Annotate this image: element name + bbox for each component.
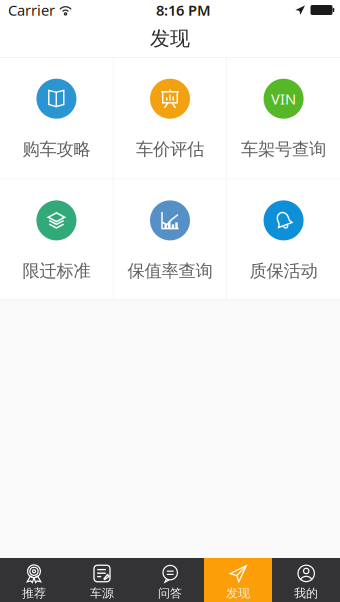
staticText: 车源 [90,586,114,601]
staticText: 车价评估 [136,139,204,160]
staticText: 问答 [158,586,182,601]
button[interactable]: 购车攻略 [0,58,113,179]
button[interactable]: 我的 [272,558,340,602]
button[interactable]: 保值率查询 [114,179,226,299]
staticText: 我的 [294,586,318,601]
button[interactable]: 车价评估 [114,58,226,179]
staticText: 发现 [226,586,250,601]
staticText: 8:16 PM [156,0,211,20]
staticText: 购车攻略 [22,139,90,160]
staticText: VIN [271,89,296,108]
button[interactable]: 发现 [204,558,272,602]
staticText: 保值率查询 [127,260,212,282]
staticText: 发现 [150,26,190,51]
button[interactable]: 质保活动 [227,179,340,299]
staticText: 车架号查询 [241,139,326,160]
button[interactable]: 推荐 [0,558,68,602]
button[interactable]: 限迁标准 [0,179,113,299]
staticText: 质保活动 [250,260,318,282]
button[interactable]: 车源 [68,558,136,602]
staticText: 限迁标准 [22,260,90,282]
button[interactable]: VIN [227,58,340,179]
staticText: Carrier [8,0,55,20]
button[interactable]: 问答 [136,558,204,602]
staticText: 推荐 [22,586,46,601]
